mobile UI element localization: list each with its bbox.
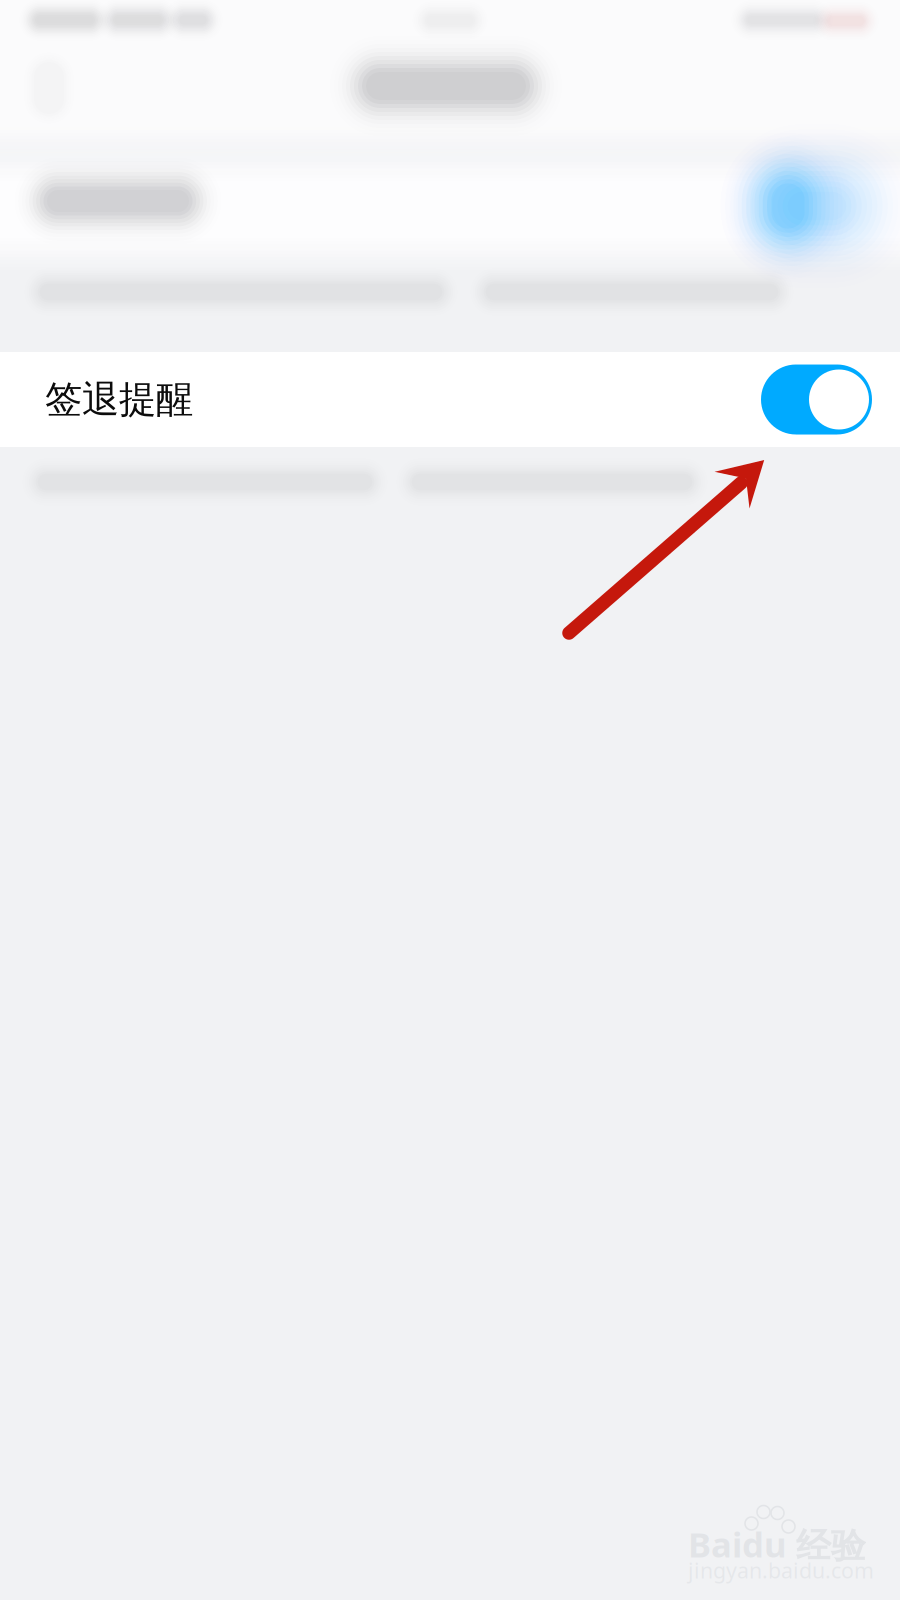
staticText: jingyan.baidu.com (688, 1556, 874, 1584)
button[interactable]: 签退提醒 (0, 352, 900, 447)
staticText: Baidu 经验 (688, 1521, 866, 1567)
staticText: 签退提醒 (45, 377, 193, 422)
